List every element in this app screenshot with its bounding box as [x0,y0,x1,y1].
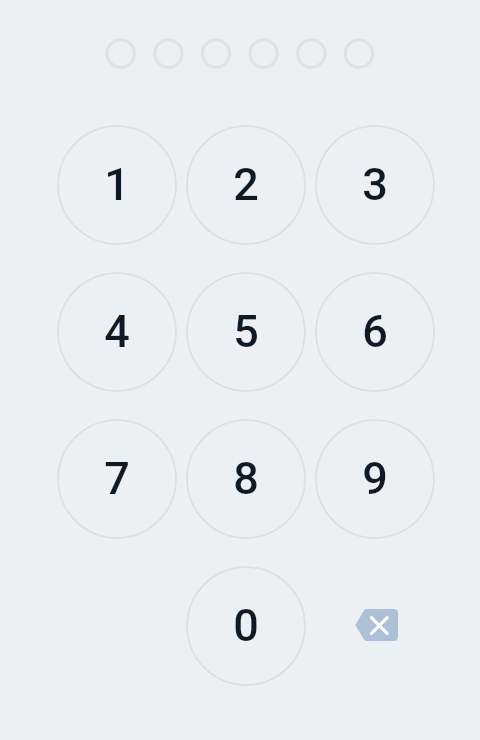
button[interactable]: 6 [315,272,435,392]
staticText: 3 [362,158,388,211]
staticText: 5 [233,305,259,358]
button[interactable]: 7 [57,419,177,539]
button[interactable]: 5 [186,272,306,392]
button[interactable]: 8 [186,419,306,539]
button[interactable]: Delete [315,566,435,686]
button[interactable]: 3 [315,125,435,245]
staticText: 2 [233,158,259,211]
staticText: 8 [233,452,259,505]
button[interactable]: 1 [57,125,177,245]
staticText: 7 [104,452,130,505]
staticText: 4 [104,305,130,358]
staticText: 0 [233,599,259,652]
staticText: 1 [104,158,130,211]
button[interactable]: 0 [186,566,306,686]
button[interactable]: 9 [315,419,435,539]
button[interactable]: 2 [186,125,306,245]
button[interactable]: 4 [57,272,177,392]
staticText: 9 [362,452,388,505]
staticText: 6 [362,305,388,358]
